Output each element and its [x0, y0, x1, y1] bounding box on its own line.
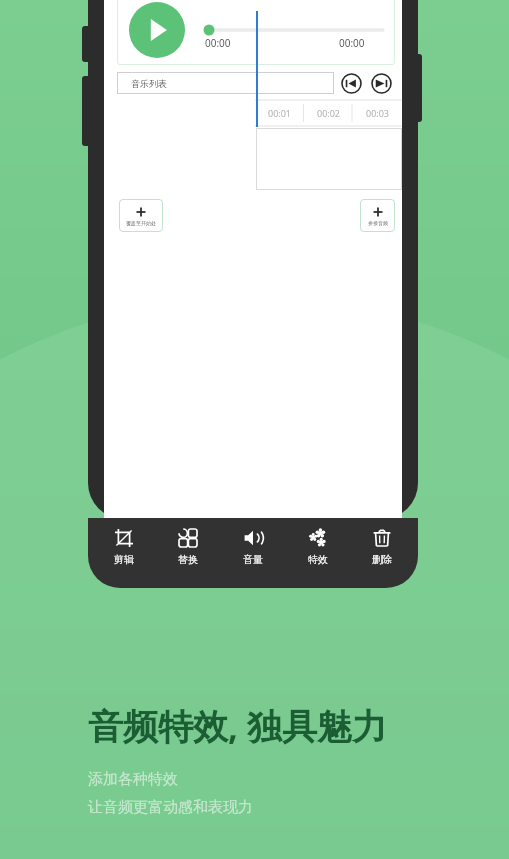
staticText: 覆盖至开始处: [126, 220, 156, 226]
staticText: 让音频更富动感和表现力: [88, 798, 253, 817]
staticText: 添加各种特效: [88, 770, 178, 789]
button[interactable]: 音乐列表: [117, 72, 334, 94]
staticText: 特效: [308, 553, 328, 566]
button[interactable]: 剪辑: [95, 518, 153, 588]
staticText: 音量: [243, 553, 263, 566]
staticText: 剪辑: [114, 553, 134, 566]
staticText: 00:00: [205, 36, 231, 50]
button[interactable]: 删除: [353, 518, 411, 588]
staticText: 00:03: [366, 107, 390, 119]
button[interactable]: Play: [129, 2, 185, 58]
button[interactable]: [256, 128, 402, 190]
staticText: 音频特效, 独具魅力: [88, 702, 388, 750]
button[interactable]: 音量: [224, 518, 282, 588]
staticText: 删除: [372, 553, 392, 566]
staticText: 00:01: [268, 107, 292, 119]
button[interactable]: 拼接音频: [360, 199, 395, 232]
staticText: 00:00: [339, 36, 365, 50]
button[interactable]: Previous: [341, 73, 362, 94]
button[interactable]: 特效: [289, 518, 347, 588]
staticText: 拼接音频: [368, 220, 388, 226]
button[interactable]: Play: [117, 0, 395, 65]
button[interactable]: 覆盖至开始处: [119, 199, 163, 232]
button[interactable]: 替换: [159, 518, 217, 588]
button[interactable]: Next: [371, 73, 392, 94]
staticText: 00:02: [317, 107, 341, 119]
staticText: 音乐列表: [131, 78, 167, 89]
staticText: 替换: [178, 553, 198, 566]
